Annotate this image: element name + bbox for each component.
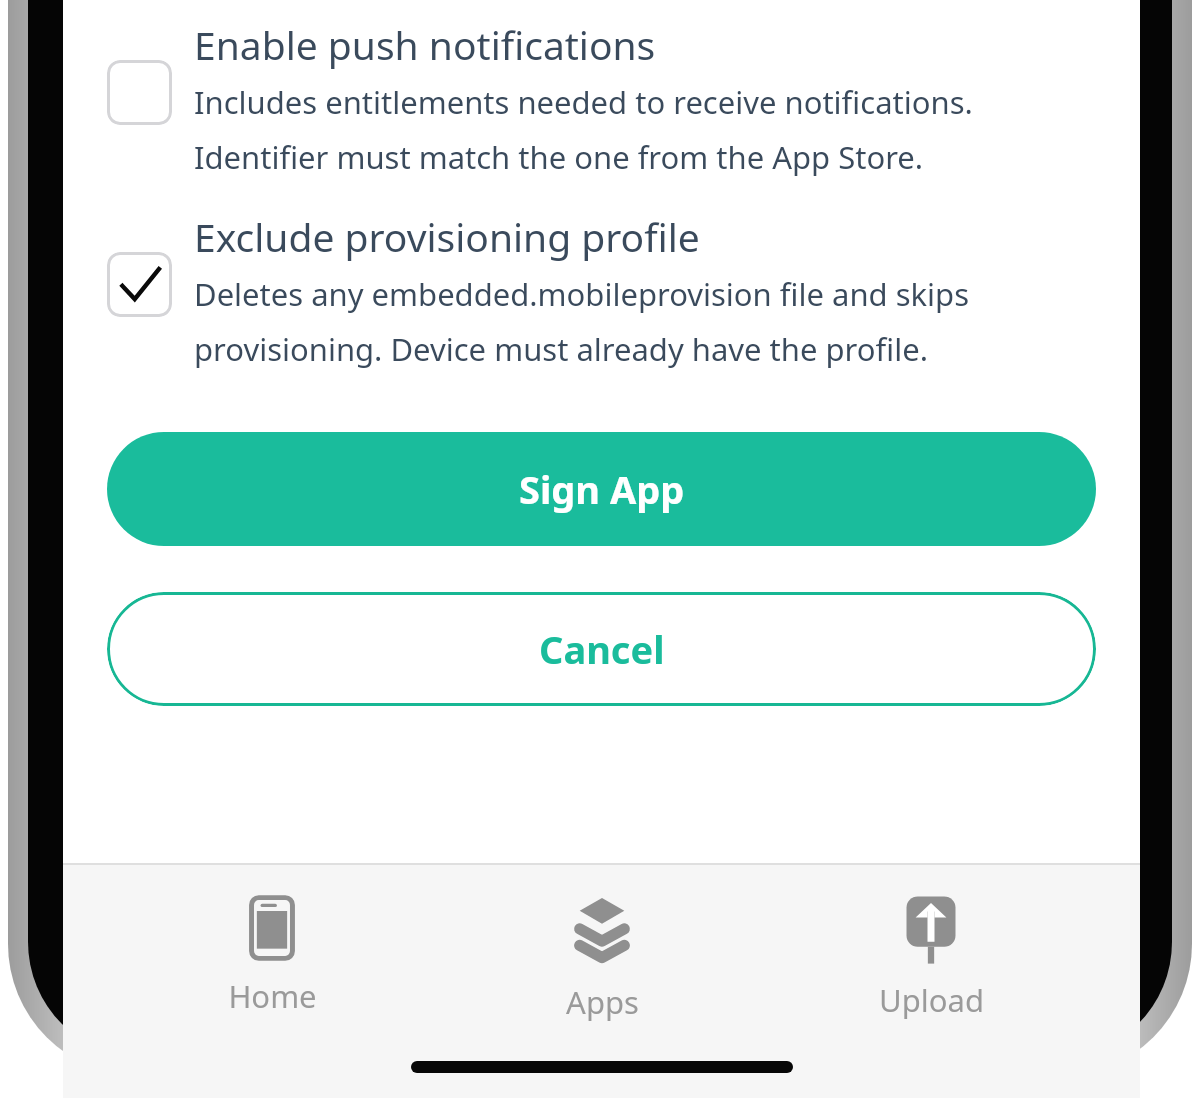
other: Enable push notifications [107,60,172,125]
button[interactable]: Sign App [107,432,1096,546]
staticText: Enable push notifications [194,18,656,71]
staticText: Apps [566,981,639,1023]
other: Home [239,895,305,961]
staticText: Home [228,975,317,1017]
staticText: Includes entitlements needed to receive … [194,81,973,178]
staticText: Deletes any embedded.mobileprovision fil… [194,273,970,370]
other: Apps [566,895,638,967]
button[interactable]: Enable push notifications [63,18,1140,178]
button[interactable]: Cancel [107,592,1096,706]
staticText: Exclude provisioning profile [194,210,700,263]
button[interactable]: Apps [482,889,722,1029]
other: Upload [896,895,966,965]
button[interactable]: Upload [811,889,1051,1027]
button[interactable]: Exclude provisioning profile [63,210,1140,370]
button[interactable]: Home [152,889,392,1023]
staticText: Sign App [519,463,685,515]
staticText: Upload [879,979,984,1021]
staticText: Cancel [539,623,665,675]
other: Exclude provisioning profile [107,252,172,317]
